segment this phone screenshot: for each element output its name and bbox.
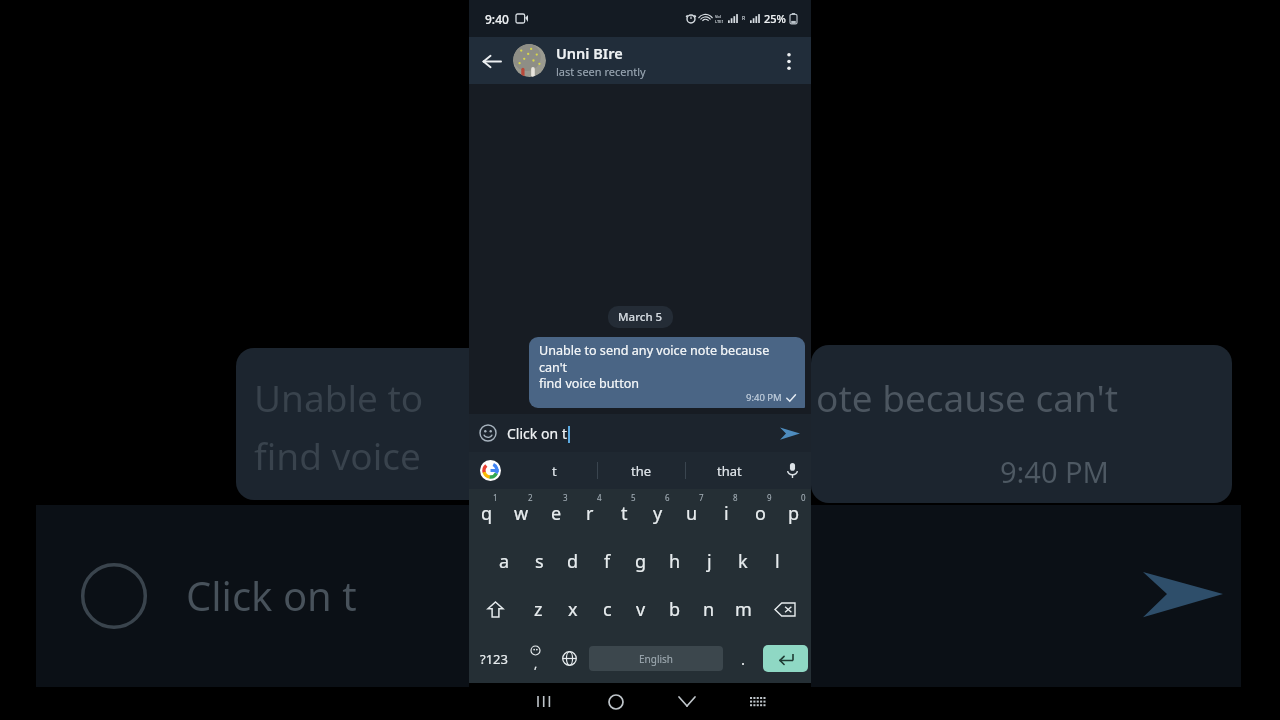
button[interactable]: Change language <box>552 634 586 683</box>
button[interactable]: e <box>539 489 573 537</box>
staticText: t <box>621 501 628 526</box>
button[interactable]: March 5 <box>608 306 673 328</box>
staticText: q <box>481 501 493 526</box>
button[interactable]: u <box>675 489 709 537</box>
button[interactable]: Emoji <box>469 414 507 452</box>
staticText: n <box>703 597 715 622</box>
staticText: x <box>568 597 578 622</box>
staticText: 9 <box>767 492 772 503</box>
button[interactable]: the <box>598 452 685 489</box>
staticText: 2 <box>528 492 533 503</box>
staticText: z <box>534 597 543 622</box>
staticText: u <box>686 501 698 526</box>
button[interactable]: n <box>692 585 726 634</box>
staticText: y <box>653 501 663 526</box>
button[interactable]: Shift <box>469 585 521 634</box>
button[interactable]: f <box>590 537 624 585</box>
button[interactable]: Unni BIre <box>513 37 767 84</box>
button[interactable]: Unable to send any voice note because ca… <box>529 337 805 408</box>
staticText: Click on <box>507 424 562 443</box>
staticText: Click on t <box>186 568 357 622</box>
button[interactable]: h <box>658 537 692 585</box>
button[interactable]: l <box>760 537 794 585</box>
staticText: last seen recently <box>556 64 646 79</box>
button[interactable]: ?123 <box>469 634 518 683</box>
staticText: d <box>567 549 579 574</box>
button[interactable]: Send <box>769 414 811 452</box>
staticText: t <box>552 462 557 480</box>
button[interactable]: Voice input <box>773 452 811 489</box>
staticText: b <box>669 597 681 622</box>
staticText: English <box>639 652 674 666</box>
staticText: o <box>755 501 766 526</box>
staticText: p <box>788 501 800 526</box>
staticText: t <box>562 424 568 443</box>
staticText: the <box>631 462 652 480</box>
button[interactable]: Keyboard switcher <box>722 683 793 720</box>
button[interactable]: i <box>709 489 743 537</box>
staticText: ote because can't <box>816 372 1119 422</box>
staticText: e <box>551 501 562 526</box>
staticText: R <box>742 15 746 22</box>
button[interactable]: j <box>692 537 726 585</box>
staticText: 8 <box>733 492 738 503</box>
staticText: i <box>724 501 729 526</box>
button[interactable]: v <box>624 585 658 634</box>
button[interactable]: k <box>726 537 760 585</box>
button[interactable]: y <box>641 489 675 537</box>
button[interactable]: b <box>658 585 692 634</box>
button[interactable]: z <box>521 585 556 634</box>
staticText: 6 <box>665 492 670 503</box>
button[interactable]: English <box>589 646 723 671</box>
staticText: l <box>775 549 780 574</box>
button[interactable]: q <box>469 489 504 537</box>
staticText: Vol LTE1 <box>715 14 724 24</box>
staticText: r <box>586 501 594 526</box>
staticText: that <box>717 462 742 480</box>
button[interactable]: d <box>556 537 590 585</box>
button[interactable]: o <box>743 489 777 537</box>
button[interactable]: s <box>522 537 556 585</box>
staticText: 1 <box>493 492 498 503</box>
staticText: 3 <box>563 492 568 503</box>
button[interactable]: Emoji and comma <box>518 634 552 683</box>
button[interactable]: x <box>556 585 590 634</box>
button[interactable]: g <box>624 537 658 585</box>
staticText: 4 <box>597 492 602 503</box>
staticText: 7 <box>699 492 704 503</box>
button[interactable]: c <box>590 585 624 634</box>
button[interactable]: Backspace <box>760 585 811 634</box>
button[interactable]: m <box>726 585 760 634</box>
button[interactable]: t <box>511 452 597 489</box>
staticText: 9:40 PM <box>746 391 782 404</box>
staticText: h <box>669 549 681 574</box>
button[interactable]: Click on <box>507 424 769 443</box>
staticText: c <box>603 597 612 622</box>
staticText: v <box>636 597 646 622</box>
staticText: j <box>707 549 712 574</box>
staticText: g <box>635 549 647 574</box>
staticText: Unable to <box>254 372 424 422</box>
button[interactable]: r <box>573 489 607 537</box>
button[interactable]: a <box>487 537 522 585</box>
button[interactable]: Recent apps <box>510 683 580 720</box>
button[interactable]: Home <box>580 683 651 720</box>
staticText: Unable to send any voice note because ca… <box>539 342 796 391</box>
button[interactable]: . <box>726 634 760 683</box>
staticText: w <box>514 501 529 526</box>
staticText: Unni BIre <box>556 43 623 63</box>
button[interactable]: w <box>504 489 539 537</box>
button[interactable]: Hide keyboard <box>651 683 722 720</box>
button[interactable]: Google <box>469 452 511 489</box>
staticText: find voice <box>254 430 421 480</box>
button[interactable]: More options <box>767 39 811 83</box>
staticText: 9:40 PM <box>1000 452 1109 491</box>
button[interactable]: p <box>777 489 811 537</box>
staticText: 25% <box>764 11 786 26</box>
button[interactable]: Enter <box>763 645 808 672</box>
button[interactable]: Back <box>469 39 513 83</box>
button[interactable]: t <box>607 489 641 537</box>
staticText: March 5 <box>618 309 663 325</box>
button[interactable]: that <box>686 452 773 489</box>
staticText: . <box>741 649 746 669</box>
